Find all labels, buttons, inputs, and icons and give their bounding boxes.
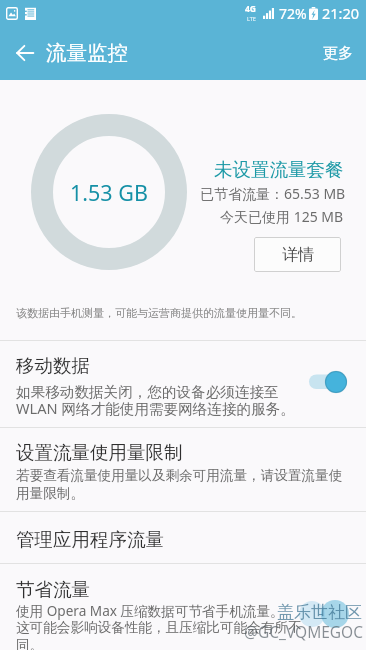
staticText: 4G <box>245 3 257 15</box>
button[interactable]: 更多 <box>308 30 366 77</box>
button[interactable]: 详情 <box>254 237 341 272</box>
staticText: 流量监控 <box>46 40 128 66</box>
button[interactable] <box>0 564 366 650</box>
staticText: 移动数据 <box>16 354 90 377</box>
button[interactable] <box>0 428 366 511</box>
staticText: 详情 <box>282 245 314 265</box>
staticText: 这可能会影响设备性能，且压缩比可能会有所不 <box>16 619 302 636</box>
button[interactable] <box>0 512 366 563</box>
staticText: 更多 <box>323 44 353 63</box>
staticText: 1.53 GB <box>70 178 148 207</box>
staticText: 设置流量使用量限制 <box>16 441 183 464</box>
staticText: 21:20 <box>322 3 360 23</box>
staticText: 若要查看流量使用量以及剩余可用流量，请设置流量使 <box>16 467 343 484</box>
staticText: 节省流量 <box>16 578 90 601</box>
staticText: 同。 <box>16 637 44 650</box>
staticText: 已节省流量：65.53 MB <box>200 184 346 203</box>
staticText: 用量限制。 <box>16 485 84 502</box>
button[interactable] <box>0 341 366 427</box>
button[interactable]: Mobile data toggle <box>306 369 351 395</box>
staticText: 今天已使用 125 MB <box>220 207 344 226</box>
staticText: @GC_VQMEGOC <box>244 621 364 642</box>
staticText: 盖乐世社区 <box>277 602 362 623</box>
staticText: 如果移动数据关闭，您的设备必须连接至 <box>16 383 279 401</box>
button[interactable]: Back <box>0 33 44 73</box>
staticText: 管理应用程序流量 <box>16 528 164 551</box>
staticText: 未设置流量套餐 <box>214 158 344 181</box>
staticText: 该数据由手机测量，可能与运营商提供的流量使用量不同。 <box>16 306 302 320</box>
staticText: 72% <box>279 4 307 23</box>
staticText: LTE <box>247 15 256 22</box>
staticText: 使用 Opera Max 压缩数据可节省手机流量。 <box>16 601 284 620</box>
staticText: WLAN 网络才能使用需要网络连接的服务。 <box>16 398 295 418</box>
